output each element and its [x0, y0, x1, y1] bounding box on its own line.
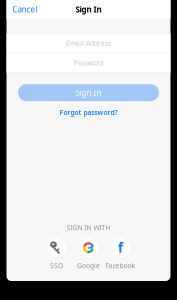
- button[interactable]: Forgot password?: [53, 105, 123, 120]
- button[interactable]: Google: [72, 238, 104, 270]
- staticText: Forgot password?: [59, 108, 117, 117]
- staticText: Email Address: [66, 39, 111, 48]
- staticText: Facebook: [105, 261, 135, 270]
- staticText: f: [118, 239, 123, 256]
- staticText: Cancel: [12, 4, 37, 15]
- button[interactable]: f: [104, 238, 136, 270]
- staticText: SIGN IN WITH: [66, 223, 110, 232]
- button[interactable]: Cancel: [6, 0, 43, 19]
- button[interactable]: SSO: [40, 238, 72, 270]
- staticText: Sign In: [75, 87, 101, 98]
- button[interactable]: Sign In: [18, 84, 159, 101]
- staticText: SSO: [50, 261, 63, 270]
- staticText: Sign In: [75, 4, 101, 15]
- staticText: Google: [77, 261, 100, 270]
- staticText: Password: [73, 58, 103, 67]
